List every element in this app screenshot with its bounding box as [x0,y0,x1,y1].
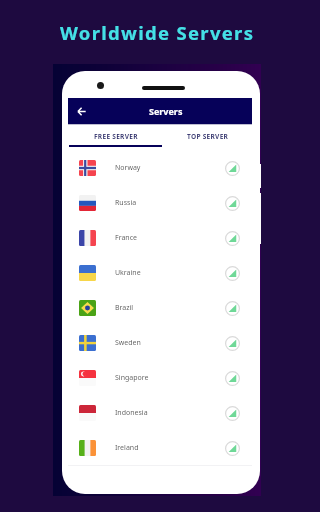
button[interactable]: Sweden [68,325,252,360]
button[interactable]: FREE SERVER [70,125,162,145]
staticText: Russia [115,198,137,208]
button[interactable]: Indonesia [68,395,252,430]
button[interactable]: Signal strength [222,403,242,423]
button[interactable]: TOP SERVER [162,125,254,145]
button[interactable]: Signal strength [222,158,242,178]
staticText: Sweden [115,338,141,348]
button[interactable]: Signal strength [222,298,242,318]
button[interactable]: Back [70,100,92,122]
staticText: Singapore [115,373,149,383]
staticText: FREE SERVER [94,132,138,141]
button[interactable]: Signal strength [222,263,242,283]
button[interactable]: Signal strength [222,228,242,248]
staticText: Worldwide Servers [60,20,255,45]
staticText: Brazil [115,303,134,313]
button[interactable]: Russia [68,185,252,220]
staticText: TOP SERVER [187,132,229,141]
button[interactable]: Ukraine [68,255,252,290]
button[interactable]: Signal strength [222,333,242,353]
button[interactable]: Norway [68,150,252,185]
button[interactable]: Signal strength [222,438,242,458]
button[interactable]: Ireland [68,430,252,465]
staticText: France [115,233,137,243]
button[interactable]: France [68,220,252,255]
button[interactable]: Signal strength [222,368,242,388]
staticText: Ireland [115,443,139,453]
button[interactable]: Signal strength [222,193,242,213]
button[interactable]: Singapore [68,360,252,395]
staticText: Servers [149,105,183,117]
staticText: Norway [115,163,141,173]
staticText: Ukraine [115,268,141,278]
button[interactable]: Brazil [68,290,252,325]
button[interactable]: Servers [68,98,252,124]
staticText: Indonesia [115,408,148,418]
